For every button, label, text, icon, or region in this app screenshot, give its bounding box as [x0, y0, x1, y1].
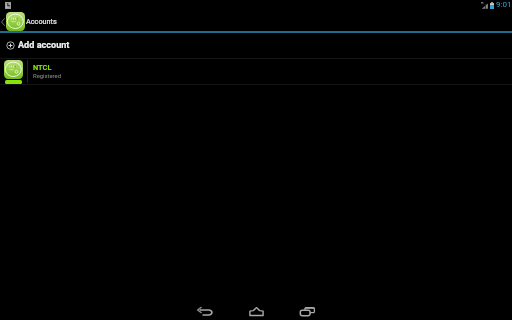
button[interactable]: Add account: [0, 33, 512, 58]
button[interactable]: Home: [236, 298, 276, 320]
staticText: Add account: [18, 40, 70, 51]
staticText: 9:01: [496, 0, 512, 9]
button[interactable]: Accounts: [0, 12, 60, 31]
staticText: Accounts: [26, 17, 57, 26]
button[interactable]: NTCL: [0, 59, 512, 85]
staticText: Registered: [33, 73, 61, 80]
button[interactable]: Recent apps: [287, 298, 327, 320]
button[interactable]: Back: [185, 298, 225, 320]
staticText: NTCL: [33, 63, 52, 72]
